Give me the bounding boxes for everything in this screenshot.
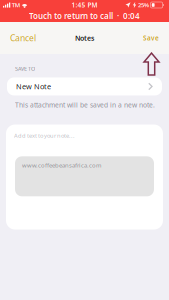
staticText: Save [143,34,159,42]
staticText: Add text to your note... [14,131,75,139]
button[interactable]: Save [133,28,169,48]
staticText: TM [12,1,20,9]
staticText: Touch to return to call · 0:04 [29,11,140,21]
staticText: 1:45 PM [71,1,97,9]
staticText: SAVE TO [15,65,35,72]
staticText: Notes [75,33,94,43]
button[interactable]: New Note [7,77,162,95]
staticText: This attachment will be saved in a new n… [15,100,155,109]
button[interactable]: Touch to return to call · 0:04 [0,10,169,22]
button[interactable]: Cancel [0,26,46,50]
staticText: 25% [138,1,149,9]
staticText: www.coffeebeansafrica.com [22,161,101,169]
staticText: New Note [16,81,51,91]
staticText: Cancel [10,32,36,44]
